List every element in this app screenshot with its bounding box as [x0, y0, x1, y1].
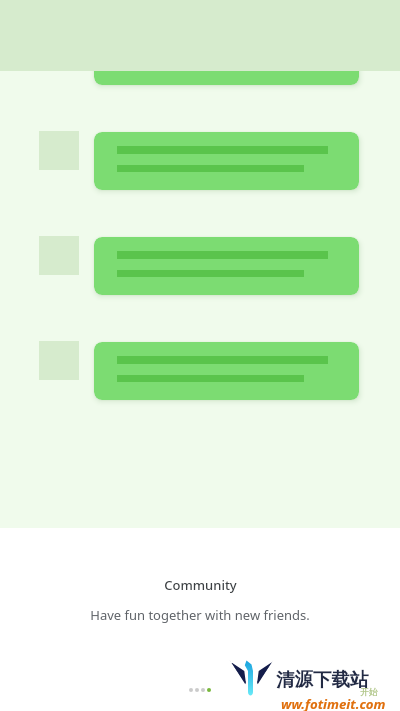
staticText: 清源下载站 — [276, 668, 369, 691]
staticText: Community — [164, 576, 237, 594]
staticText: 开始 — [360, 686, 378, 697]
staticText: Have fun together with new friends. — [90, 606, 310, 624]
button[interactable]: Community post 1 — [94, 27, 359, 85]
button[interactable]: Community post 4 — [94, 342, 359, 400]
button[interactable]: Go to page 3 — [201, 688, 205, 692]
button[interactable]: Community post 3 — [94, 237, 359, 295]
button[interactable]: Community post 2 — [94, 132, 359, 190]
button[interactable]: Go to page 4 — [207, 688, 211, 692]
button[interactable]: Go to page 1 — [189, 688, 193, 692]
staticText: ww.fotimeit.com — [281, 695, 386, 711]
button[interactable]: Go to page 2 — [195, 688, 199, 692]
